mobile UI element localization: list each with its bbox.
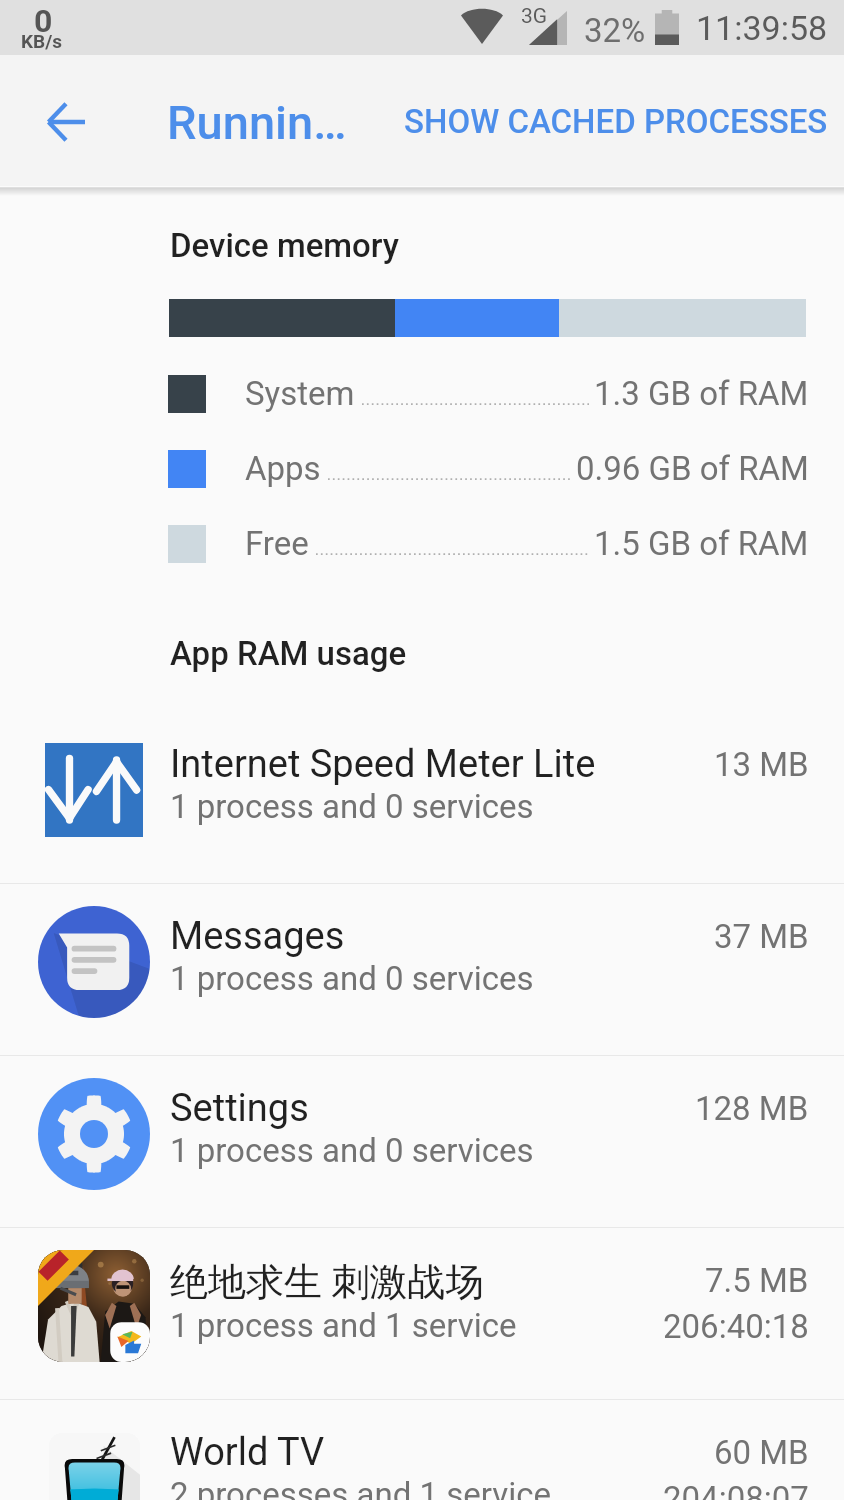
- staticText: Settings: [170, 1086, 309, 1131]
- staticText: 1 process and 0 services: [170, 1131, 534, 1170]
- staticText: 1 process and 0 services: [170, 787, 534, 826]
- button[interactable]: Internet Speed Meter Lite: [0, 712, 844, 883]
- staticText: App RAM usage: [170, 634, 407, 673]
- staticText: 绝地求生 刺激战场: [170, 1258, 484, 1306]
- button[interactable]: Settings: [0, 1056, 844, 1227]
- button[interactable]: Navigate up: [26, 82, 106, 162]
- button[interactable]: SHOW CACHED PROCESSES: [390, 90, 842, 153]
- staticText: System: [245, 374, 355, 413]
- staticText: Free: [245, 524, 309, 563]
- button[interactable]: Messages: [0, 884, 844, 1055]
- button[interactable]: 绝地求生 刺激战场: [0, 1228, 844, 1399]
- staticText: KB/s: [21, 30, 63, 52]
- staticText: 0.96 GB of RAM: [576, 449, 809, 488]
- staticText: 13 MB: [714, 745, 809, 784]
- staticText: 204:08:07: [663, 1479, 809, 1500]
- staticText: 1 process and 1 service: [170, 1306, 517, 1345]
- staticText: SHOW CACHED PROCESSES: [404, 102, 828, 141]
- staticText: 1 process and 0 services: [170, 959, 534, 998]
- staticText: 2 processes and 1 service: [170, 1475, 551, 1500]
- staticText: Internet Speed Meter Lite: [170, 742, 596, 787]
- staticText: Device memory: [170, 226, 399, 265]
- staticText: 1.3 GB of RAM: [594, 374, 809, 413]
- staticText: 206:40:18: [663, 1307, 809, 1346]
- staticText: 7.5 MB: [705, 1261, 809, 1300]
- staticText: Messages: [170, 914, 345, 959]
- button[interactable]: World TV: [0, 1400, 844, 1500]
- staticText: Apps: [245, 449, 321, 488]
- staticText: 60 MB: [714, 1433, 809, 1472]
- staticText: 37 MB: [714, 917, 809, 956]
- staticText: 0: [34, 2, 53, 40]
- staticText: 11:39:58: [696, 8, 828, 48]
- staticText: 3G: [521, 4, 548, 29]
- staticText: 1.5 GB of RAM: [594, 524, 809, 563]
- staticText: 128 MB: [695, 1089, 809, 1128]
- staticText: World TV: [170, 1430, 325, 1475]
- staticText: 32%: [584, 11, 646, 50]
- staticText: Runnin…: [167, 95, 347, 150]
